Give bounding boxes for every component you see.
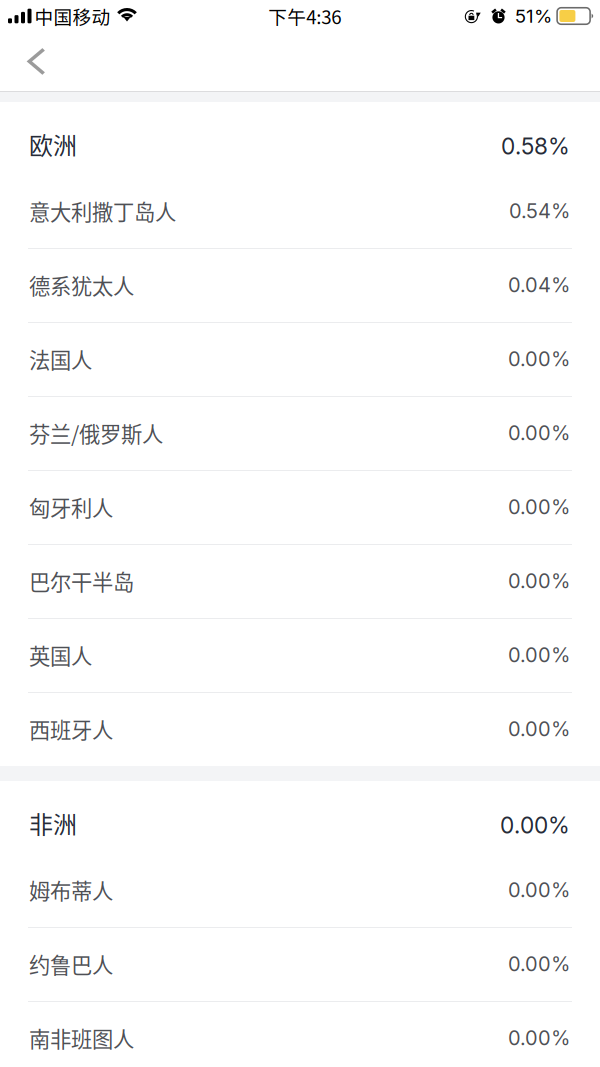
button[interactable]: 英国人 <box>0 618 600 692</box>
button[interactable]: 约鲁巴人 <box>0 927 600 1001</box>
button[interactable]: 南非班图人 <box>0 1001 600 1067</box>
button[interactable]: 西班牙人 <box>0 692 600 766</box>
button[interactable]: 德系犹太人 <box>0 248 600 322</box>
staticText: 下午4:36 <box>268 2 341 29</box>
staticText: 姆布蒂人 <box>29 875 113 905</box>
staticText: 0.00% <box>508 878 570 902</box>
staticText: 德系犹太人 <box>29 270 134 300</box>
staticText: 欧洲 <box>29 127 77 161</box>
staticText: 0.00% <box>508 643 570 667</box>
button[interactable]: 非洲 <box>0 781 600 853</box>
staticText: 0.00% <box>508 717 570 741</box>
button[interactable]: 欧洲 <box>0 102 600 174</box>
staticText: 0.00% <box>508 495 570 519</box>
staticText: 英国人 <box>29 640 92 670</box>
staticText: 意大利撒丁岛人 <box>29 196 176 226</box>
button[interactable]: 法国人 <box>0 322 600 396</box>
button[interactable]: 意大利撒丁岛人 <box>0 174 600 248</box>
staticText: 0.04% <box>508 273 570 297</box>
staticText: 0.00% <box>508 1026 570 1050</box>
staticText: 非洲 <box>29 806 77 840</box>
button[interactable]: 姆布蒂人 <box>0 853 600 927</box>
staticText: 0.54% <box>509 199 570 223</box>
staticText: 0.00% <box>508 347 570 371</box>
staticText: 0.00% <box>508 421 570 445</box>
button[interactable]: 巴尔干半岛 <box>0 544 600 618</box>
staticText: 匈牙利人 <box>29 492 113 522</box>
staticText: 0.00% <box>508 569 570 593</box>
staticText: 0.58% <box>501 132 570 160</box>
button[interactable]: Back <box>0 32 76 91</box>
staticText: 南非班图人 <box>29 1023 134 1053</box>
staticText: 中国移动 <box>34 2 110 29</box>
staticText: 巴尔干半岛 <box>29 566 134 596</box>
staticText: 51% <box>515 5 552 27</box>
staticText: 0.00% <box>500 811 570 839</box>
staticText: 西班牙人 <box>29 714 113 744</box>
button[interactable]: 芬兰/俄罗斯人 <box>0 396 600 470</box>
staticText: 0.00% <box>508 952 570 976</box>
staticText: 法国人 <box>29 344 92 374</box>
button[interactable]: 匈牙利人 <box>0 470 600 544</box>
staticText: 芬兰/俄罗斯人 <box>29 418 163 448</box>
staticText: 约鲁巴人 <box>29 949 113 979</box>
